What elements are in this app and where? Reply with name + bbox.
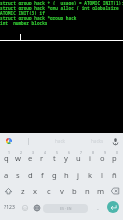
button[interactable]: f — [36, 166, 48, 183]
staticText: b — [72, 186, 77, 196]
staticText: ES · EN — [60, 206, 72, 211]
staticText: x — [33, 186, 38, 196]
button[interactable]: 1 — [0, 149, 12, 166]
staticText: n — [85, 186, 90, 196]
button[interactable]: ES · EN — [43, 204, 88, 213]
button[interactable]: Emoji — [19, 199, 31, 216]
staticText: l — [101, 170, 103, 180]
staticText: 9 — [104, 150, 106, 155]
staticText: u — [76, 153, 81, 163]
staticText: ATOMIC_INIT(3) if — [0, 10, 45, 15]
staticText: z — [21, 186, 25, 196]
button[interactable]: Shift — [0, 183, 16, 199]
button[interactable]: h — [60, 166, 72, 183]
staticText: struct group_hack + ( usage) = ATOMIC_IN… — [0, 0, 123, 5]
button[interactable]: Google search — [2, 134, 15, 147]
staticText: f — [41, 170, 44, 180]
staticText: 8 — [92, 150, 94, 155]
button[interactable]: 5 — [48, 149, 60, 166]
staticText: int number_blocks — [0, 20, 48, 25]
staticText: s — [16, 170, 20, 180]
button[interactable]: ñ — [108, 166, 120, 183]
button[interactable]: c — [42, 183, 55, 199]
staticText: t — [53, 153, 56, 163]
staticText: 4 — [44, 150, 46, 155]
staticText: v — [60, 186, 64, 196]
button[interactable]: 6 — [60, 149, 72, 166]
button[interactable]: b — [68, 183, 81, 199]
staticText: 5 — [56, 150, 58, 155]
staticText: r — [40, 153, 44, 163]
staticText: e — [28, 153, 33, 163]
button[interactable]: Enter — [107, 201, 119, 213]
button[interactable]: l — [96, 166, 108, 183]
button[interactable]: m — [94, 183, 107, 199]
button[interactable]: k — [84, 166, 96, 183]
staticText: o — [100, 153, 105, 163]
button[interactable]: Voice input — [108, 134, 122, 148]
staticText: g — [52, 170, 57, 180]
staticText: p — [112, 153, 117, 163]
button[interactable]: ?123 — [0, 199, 19, 216]
staticText: 6 — [68, 150, 70, 155]
staticText: k — [88, 170, 93, 180]
staticText: ñ — [112, 170, 117, 180]
staticText: ?123 — [4, 204, 15, 211]
button[interactable]: 0 — [108, 149, 120, 166]
button[interactable]: 8 — [84, 149, 96, 166]
button[interactable]: 7 — [72, 149, 84, 166]
staticText: hacks — [91, 138, 104, 144]
button[interactable]: v — [55, 183, 68, 199]
button[interactable]: 9 — [96, 149, 108, 166]
button[interactable]: j — [72, 166, 84, 183]
button[interactable]: a — [0, 166, 12, 183]
button[interactable]: n — [81, 183, 94, 199]
staticText: 3 — [32, 150, 34, 155]
button[interactable]: Switch language — [31, 199, 43, 216]
staticText: i — [89, 153, 91, 163]
button[interactable]: hacks — [82, 134, 112, 148]
button[interactable]: s — [12, 166, 24, 183]
staticText: j — [77, 170, 79, 180]
staticText: q — [4, 153, 9, 163]
staticText: a — [4, 170, 9, 180]
staticText: 7 — [80, 150, 82, 155]
button[interactable]: hack — [44, 134, 76, 148]
staticText: struct group_hack *group_hack — [0, 15, 77, 20]
button[interactable]: 2 — [12, 149, 24, 166]
staticText: . — [97, 203, 99, 213]
staticText: m — [97, 186, 105, 196]
staticText: 1 — [8, 150, 10, 155]
staticText: d — [28, 170, 33, 180]
button[interactable]: 4 — [36, 149, 48, 166]
button[interactable]: x — [29, 183, 42, 199]
staticText: w — [15, 153, 21, 163]
staticText: 0 — [116, 150, 118, 155]
button[interactable]: z — [16, 183, 29, 199]
staticText: hack — [55, 138, 66, 144]
staticText: struct group_hack *gnu_alloc ( int globa… — [0, 5, 119, 10]
staticText: h — [64, 170, 69, 180]
button[interactable]: Backspace — [107, 183, 123, 199]
staticText: 2 — [20, 150, 22, 155]
staticText: y — [64, 153, 68, 163]
button[interactable]: g — [48, 166, 60, 183]
staticText: c — [47, 186, 51, 196]
button[interactable]: d — [24, 166, 36, 183]
button[interactable]: 3 — [24, 149, 36, 166]
